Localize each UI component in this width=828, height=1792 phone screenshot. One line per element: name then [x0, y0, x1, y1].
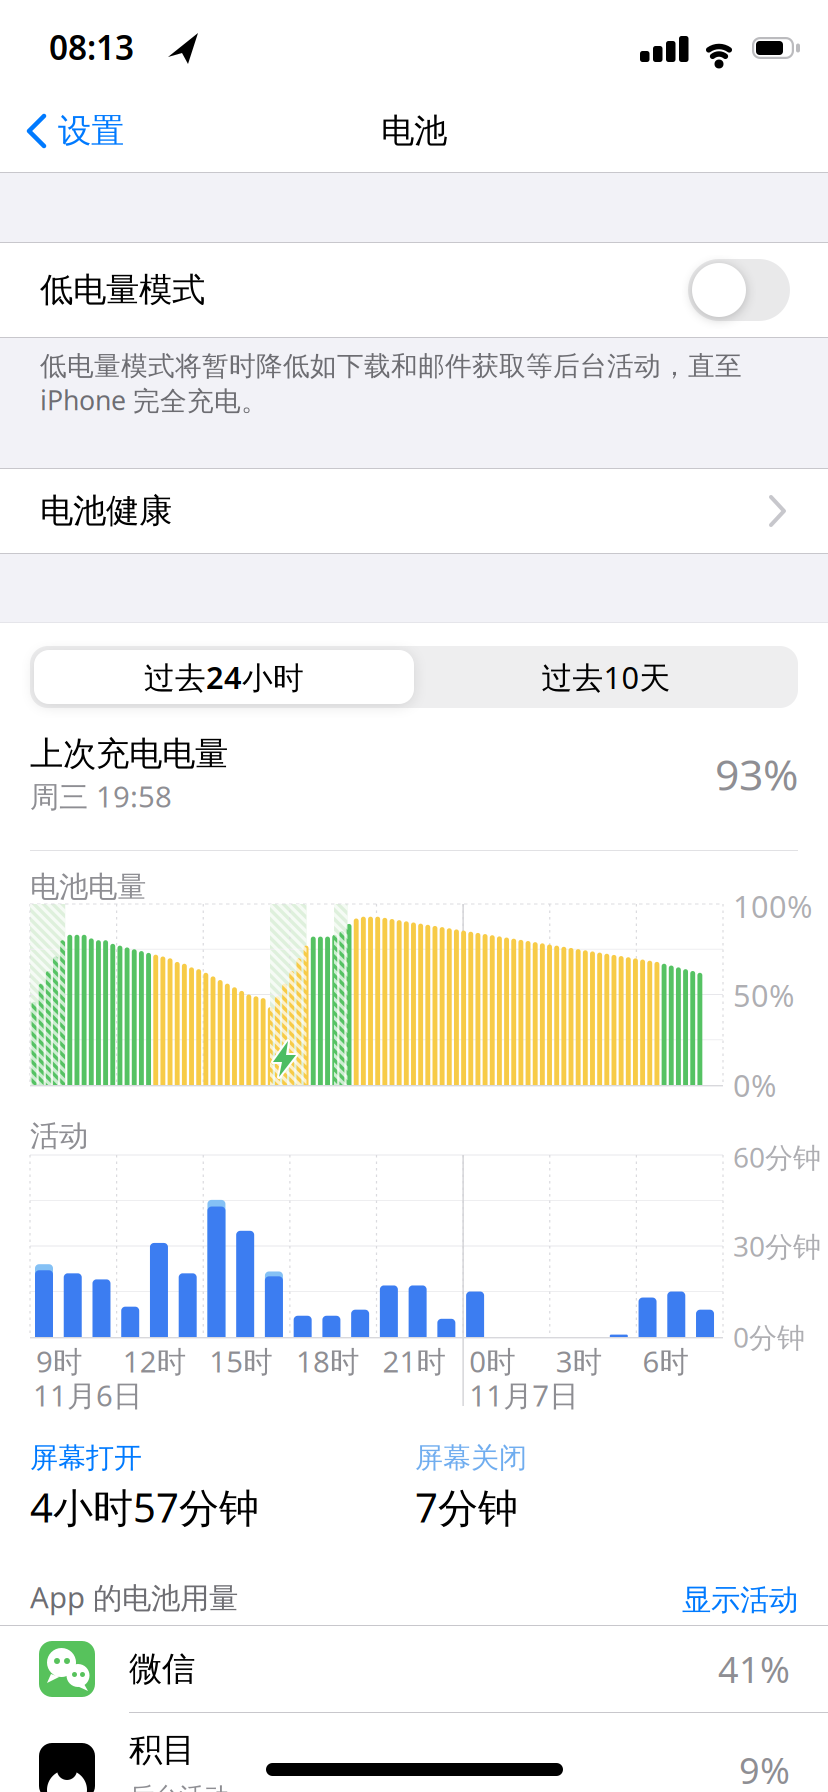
button[interactable]: 微信	[0, 1626, 828, 1712]
button[interactable]: 电池健康	[0, 469, 828, 553]
staticText: 上次充电电量	[30, 733, 228, 774]
staticText: 9时	[36, 1341, 82, 1380]
button[interactable]: 过去10天	[414, 646, 798, 708]
staticText: 18时	[296, 1341, 359, 1380]
staticText: 11月6日	[33, 1375, 142, 1414]
button[interactable]: 积目	[0, 1713, 828, 1792]
button[interactable]: 过去24小时	[34, 650, 414, 704]
staticText: 93%	[715, 746, 798, 802]
button[interactable]: 屏幕打开	[30, 1428, 142, 1488]
staticText: 周三 19:58	[30, 776, 172, 815]
button[interactable]: 设置	[26, 109, 124, 153]
staticText: 过去10天	[541, 657, 670, 697]
staticText: 积目	[129, 1729, 195, 1770]
staticText: App 的电池用量	[30, 1577, 238, 1616]
staticText: 15时	[209, 1341, 272, 1380]
staticText: 4小时57分钟	[30, 1480, 259, 1533]
staticText: 50%	[733, 975, 794, 1015]
staticText: 41%	[718, 1645, 790, 1693]
staticText: 屏幕打开	[30, 1441, 142, 1475]
staticText: 设置	[58, 110, 124, 151]
staticText: 显示活动	[682, 1582, 798, 1618]
button[interactable]: 屏幕关闭	[415, 1428, 527, 1488]
staticText: 7分钟	[415, 1480, 518, 1533]
staticText: 60分钟	[733, 1138, 821, 1176]
staticText: 100%	[733, 886, 812, 926]
staticText: 12时	[123, 1341, 186, 1380]
button[interactable]: 显示活动	[0, 1570, 798, 1630]
staticText: 低电量模式将暂时降低如下载和邮件获取等后台活动，直至	[40, 350, 742, 382]
staticText: 21时	[382, 1341, 445, 1380]
staticText: 0分钟	[733, 1318, 805, 1356]
staticText: iPhone 完全充电。	[40, 382, 268, 418]
staticText: 电池电量	[30, 869, 146, 905]
staticText: 6时	[642, 1341, 688, 1380]
button[interactable]: 低电量模式	[0, 243, 828, 337]
staticText: 屏幕关闭	[415, 1441, 527, 1475]
staticText: 9%	[739, 1746, 790, 1792]
staticText: 11月7日	[469, 1375, 578, 1414]
staticText: 0%	[733, 1065, 776, 1105]
staticText: 后台活动	[129, 1781, 229, 1792]
staticText: 低电量模式	[40, 269, 205, 310]
staticText: 活动	[30, 1118, 88, 1154]
staticText: 电池健康	[40, 490, 172, 531]
staticText: 30分钟	[733, 1227, 821, 1265]
staticText: 0时	[469, 1341, 515, 1380]
staticText: 08:13	[49, 25, 134, 69]
staticText: 电池	[381, 110, 447, 151]
staticText: 3时	[556, 1341, 602, 1380]
staticText: 微信	[129, 1648, 195, 1689]
staticText: 过去24小时	[144, 657, 304, 697]
